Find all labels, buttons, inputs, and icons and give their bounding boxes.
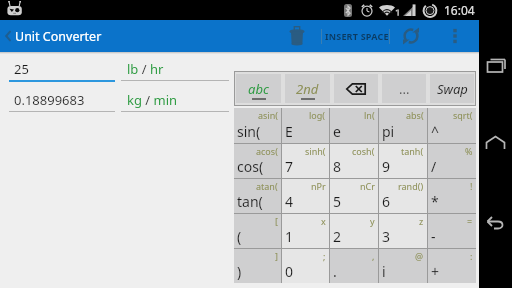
staticText: [ [275, 215, 278, 227]
button[interactable]: Delete [281, 20, 313, 52]
button[interactable]: rand() [379, 179, 427, 213]
staticText: = [467, 215, 473, 227]
staticText: y [370, 215, 375, 227]
staticText: % [465, 145, 473, 157]
button[interactable]: cosh( [330, 144, 378, 178]
button[interactable]: y [330, 214, 378, 248]
staticText: log( [309, 109, 326, 121]
staticText: tan( [237, 192, 263, 211]
button[interactable]: nPr [282, 179, 329, 213]
button[interactable]: ... [382, 74, 426, 103]
button[interactable]: 2nd [285, 74, 330, 103]
staticText: i [382, 262, 386, 281]
button[interactable]: nCr [330, 179, 378, 213]
staticText: 1 [285, 227, 294, 246]
button[interactable]: abc [236, 74, 281, 103]
button[interactable]: @ [379, 249, 427, 283]
button[interactable]: acos( [234, 144, 281, 178]
staticText: INSERT SPACE [325, 30, 389, 42]
staticText: sin( [237, 122, 261, 141]
staticText: 9 [382, 157, 391, 176]
button[interactable]: Back [479, 196, 512, 252]
button[interactable]: [ [234, 214, 281, 248]
staticText: : [470, 250, 473, 262]
staticText: , [372, 250, 375, 262]
staticText: . [333, 262, 337, 281]
staticText: ( [237, 227, 242, 246]
button[interactable]: ] [234, 249, 281, 283]
staticText: asin( [258, 109, 278, 121]
button[interactable]: x [282, 214, 329, 248]
staticText: * [431, 192, 439, 211]
button[interactable]: kg / min [121, 91, 229, 112]
button[interactable]: sqrt( [428, 108, 476, 143]
button[interactable]: Unit Converter [0, 20, 110, 52]
staticText: Unit Converter [15, 28, 102, 45]
staticText: abc [248, 80, 269, 98]
staticText: 6 [382, 192, 391, 211]
staticText: sinh( [305, 145, 326, 157]
staticText: kg / min [127, 91, 178, 109]
staticText: 2nd [296, 80, 319, 98]
staticText: nPr [311, 180, 326, 192]
staticText: ^ [431, 122, 440, 141]
button[interactable]: abs( [379, 108, 427, 143]
staticText: 0.18899683 [14, 91, 85, 109]
button[interactable]: : [428, 249, 476, 283]
button[interactable]: More options [441, 20, 469, 52]
staticText: 2 [333, 227, 342, 246]
button[interactable]: 25 [9, 60, 115, 82]
button[interactable]: lb / hr [121, 60, 229, 81]
button[interactable]: Home [479, 116, 512, 172]
staticText: Swap [437, 80, 468, 98]
staticText: nCr [360, 180, 375, 192]
staticText: / [431, 157, 437, 176]
staticText: - [431, 227, 436, 246]
staticText: atan( [256, 180, 278, 192]
button[interactable]: tanh( [379, 144, 427, 178]
button[interactable]: sinh( [282, 144, 329, 178]
button[interactable]: 0.18899683 [9, 91, 115, 112]
staticText: + [431, 262, 440, 281]
staticText: @ [415, 250, 424, 262]
button[interactable]: Swap [430, 74, 474, 103]
button[interactable]: Backspace [334, 74, 378, 103]
staticText: 0 [285, 262, 294, 281]
staticText: 7 [285, 157, 294, 176]
staticText: cos( [237, 157, 264, 176]
staticText: ; [323, 250, 326, 262]
staticText: tanh( [401, 145, 424, 157]
staticText: ) [237, 262, 242, 281]
button[interactable]: z [379, 214, 427, 248]
button[interactable]: = [428, 214, 476, 248]
staticText: 5 [333, 192, 342, 211]
button[interactable]: Refresh [395, 20, 427, 52]
staticText: z [419, 215, 424, 227]
staticText: 16:04 [444, 2, 475, 18]
staticText: ! [470, 180, 473, 192]
staticText: sqrt( [453, 109, 473, 121]
button[interactable]: % [428, 144, 476, 178]
button[interactable]: asin( [234, 108, 281, 143]
staticText: acos( [256, 145, 278, 157]
staticText: 25 [14, 60, 29, 78]
staticText: 3 [382, 227, 391, 246]
staticText: 8 [333, 157, 342, 176]
button[interactable]: , [330, 249, 378, 283]
staticText: abs( [406, 109, 424, 121]
staticText: lb / hr [127, 60, 164, 78]
staticText: rand() [398, 180, 424, 192]
staticText: E [285, 122, 293, 141]
button[interactable]: log( [282, 108, 329, 143]
staticText: e [333, 122, 341, 141]
staticText: ln( [364, 109, 375, 121]
button[interactable]: ; [282, 249, 329, 283]
button[interactable]: Recents [479, 38, 512, 94]
button[interactable]: ln( [330, 108, 378, 143]
button[interactable]: INSERT SPACE [325, 20, 389, 52]
button[interactable]: ! [428, 179, 476, 213]
staticText: x [321, 215, 326, 227]
button[interactable]: atan( [234, 179, 281, 213]
staticText: 4 [285, 192, 294, 211]
staticText: ... [399, 80, 410, 98]
